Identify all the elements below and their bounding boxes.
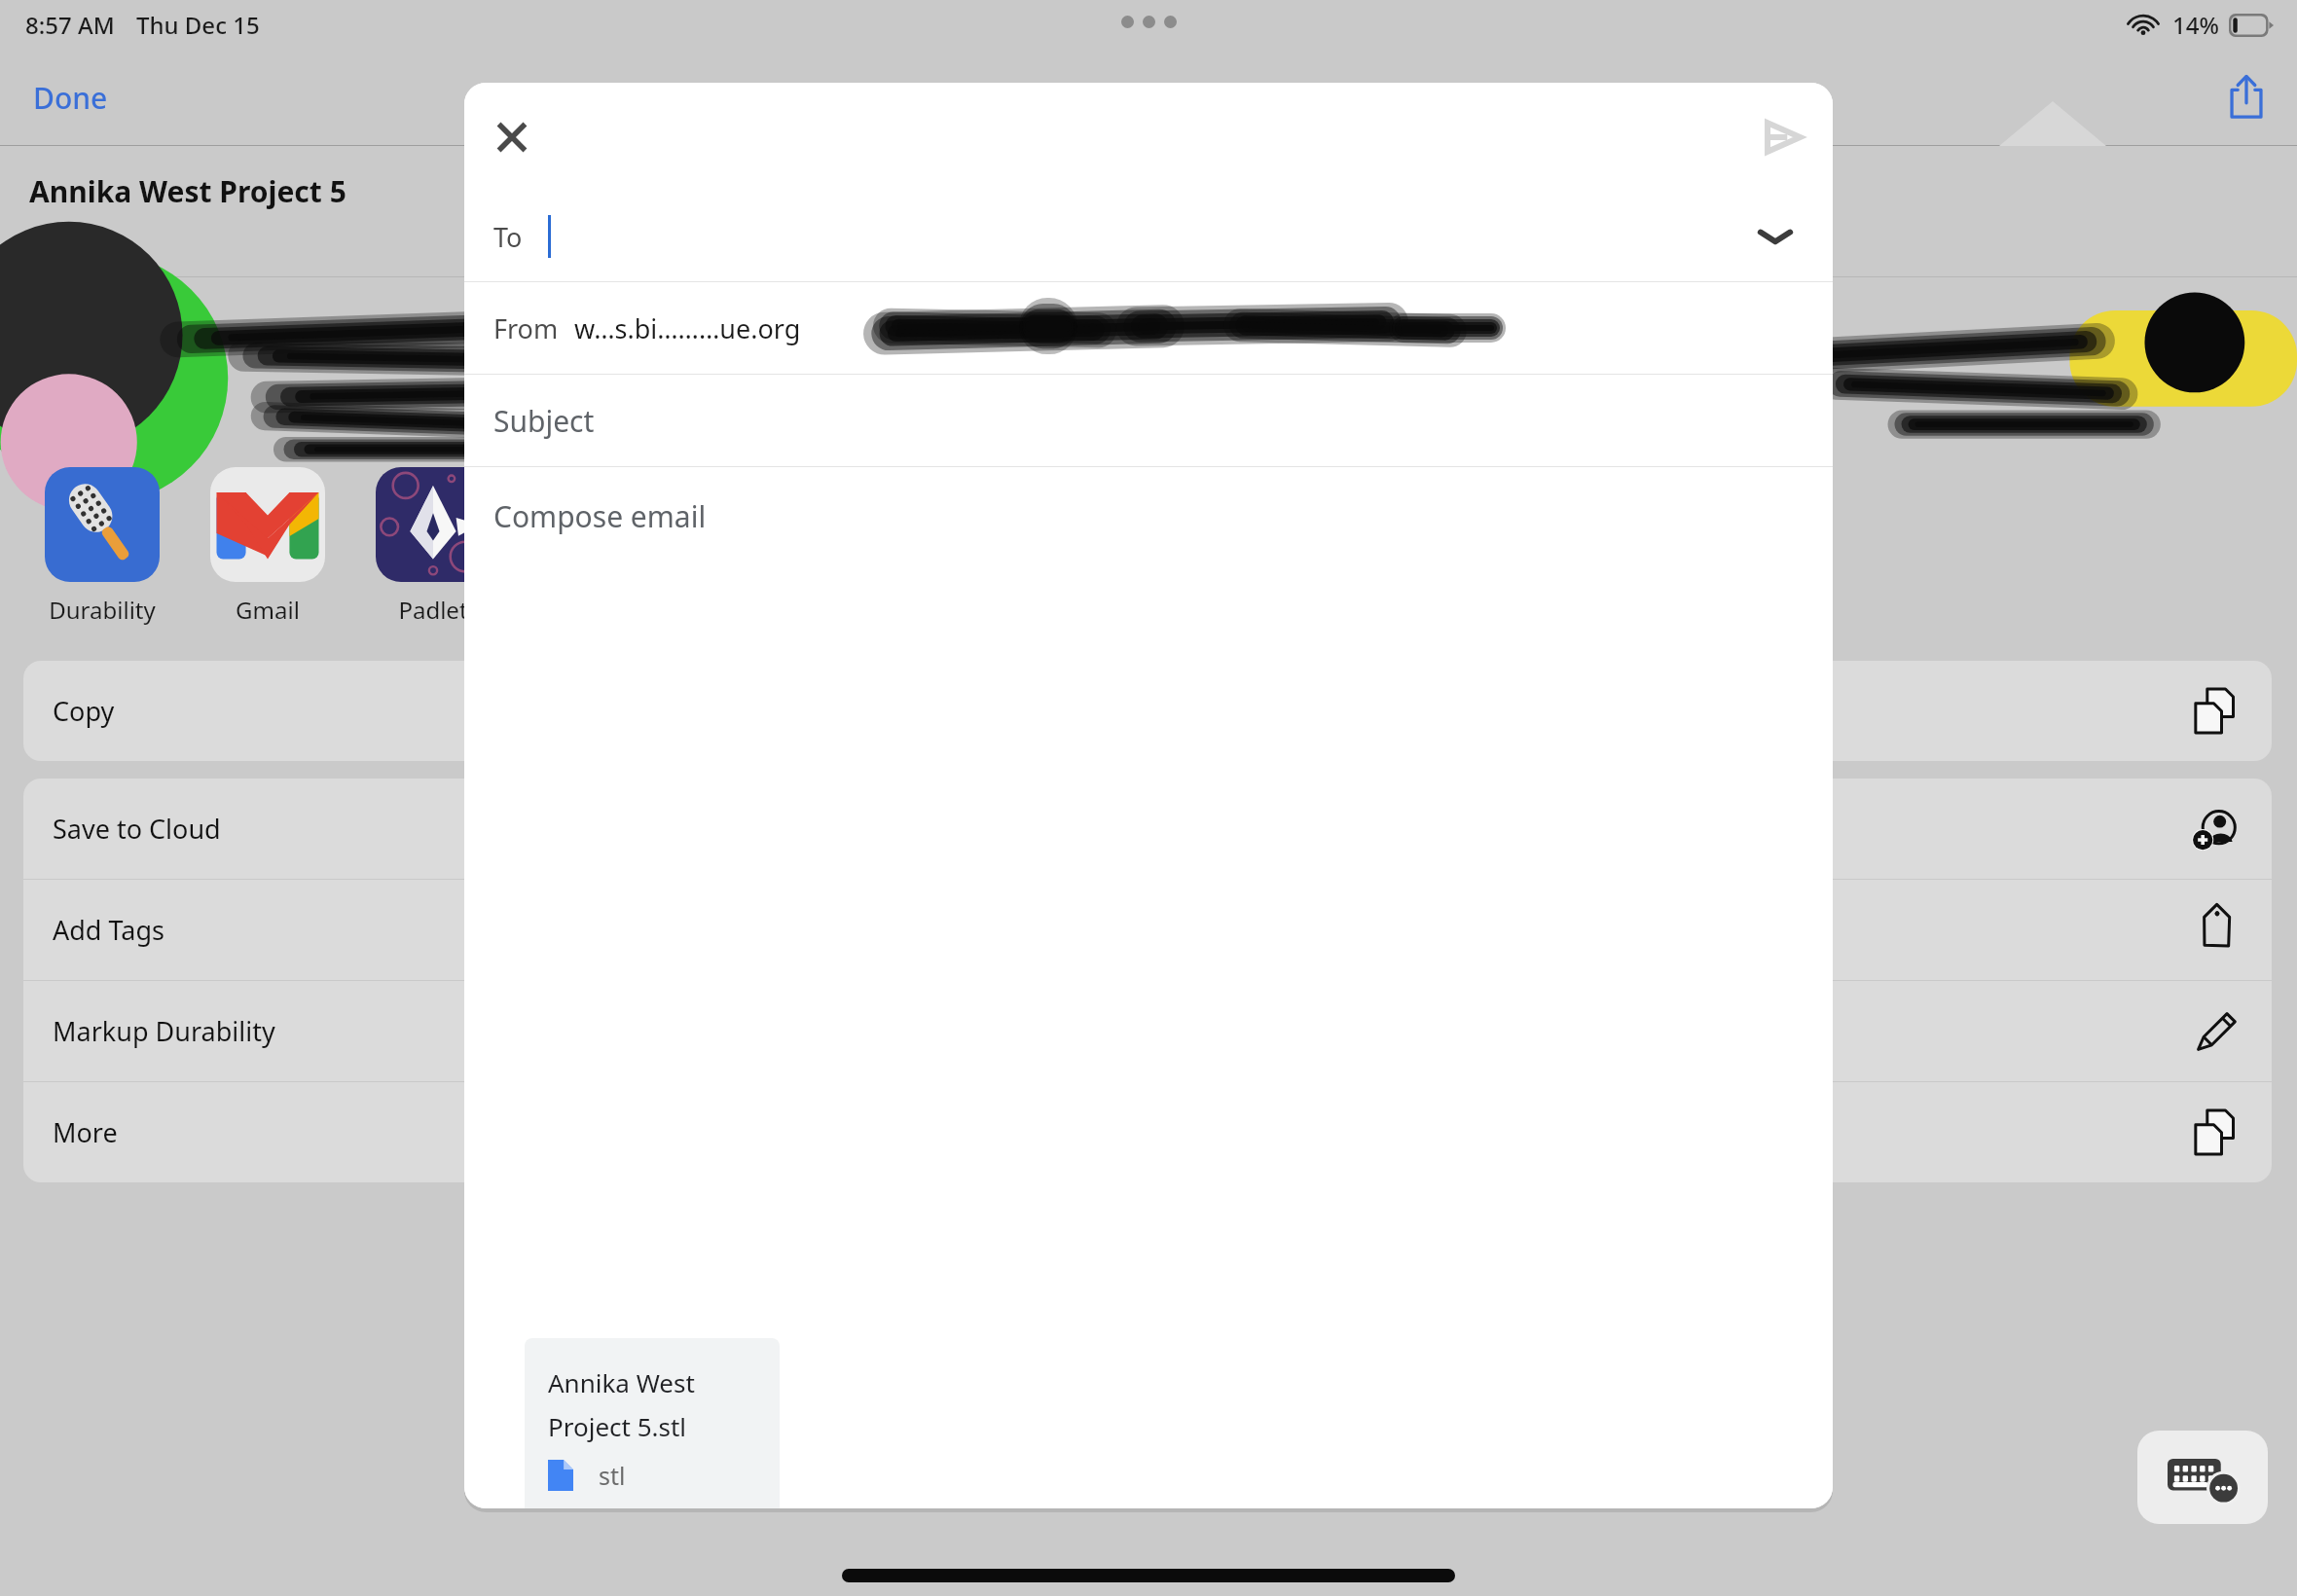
button[interactable]: To [464,192,1833,281]
button[interactable]: Subject [464,375,1833,466]
staticText: Thu Dec 15 [136,9,260,41]
button[interactable]: Close [464,103,554,171]
button[interactable]: Show more recipient fields [1747,214,1804,259]
staticText: Annika West Project 5 [29,171,346,211]
staticText: Compose email [493,496,707,536]
button[interactable]: From [464,282,1833,374]
staticText: Annika West [548,1365,695,1399]
staticText: More [53,1114,2194,1150]
staticText: stl [599,1459,626,1492]
staticText: 8:57 AM [25,9,115,41]
staticText: Done [33,78,108,118]
button[interactable]: Add Tags [23,880,2272,980]
button[interactable]: Send [1739,104,1833,170]
button[interactable]: Copy [23,661,2272,761]
staticText: Padlet [398,594,468,626]
staticText: Gmail [236,594,300,626]
staticText: To [493,219,523,255]
staticText: w…s.bi………ue.org [574,310,801,346]
button[interactable]: Share [2196,62,2297,132]
staticText: Save to Cloud [53,811,2194,847]
button[interactable]: Markup Durability [23,981,2272,1081]
button[interactable]: Keyboard options [2137,1431,2268,1524]
staticText: Project 5.stl [548,1409,687,1443]
staticText: 17 MB [29,219,99,251]
button[interactable]: Save to Cloud [23,779,2272,879]
staticText: Subject [493,401,595,441]
staticText: Add Tags [53,912,2194,948]
button[interactable]: More [23,1082,2272,1182]
staticText: Markup Durability [53,1013,2194,1049]
button[interactable]: Padlet [350,467,516,626]
staticText: Copy [53,693,2194,729]
button[interactable]: Gmail [185,467,350,626]
button[interactable]: Annika West [525,1338,780,1508]
staticText: From [493,310,559,346]
button[interactable]: Compose email [464,467,1833,1338]
staticText: Durability [49,594,156,626]
button[interactable]: Durability [19,467,185,626]
button[interactable]: Done [0,62,141,133]
staticText: 14% [2172,9,2219,41]
